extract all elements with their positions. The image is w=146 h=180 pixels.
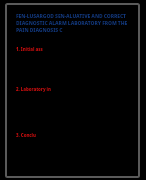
other: Report page (5, 3, 140, 178)
button[interactable]: 1. Initial ass (16, 44, 45, 54)
staticText: 3. Conclu (16, 132, 36, 138)
staticText: 2. Laboratory in (16, 86, 51, 92)
button[interactable]: 3. Conclu (16, 130, 38, 140)
staticText: PAIN DIAGNOSIS C (16, 27, 63, 34)
button[interactable]: 2. Laboratory in (16, 84, 53, 94)
staticText: DIAGNOSTIC ALARM LABORATORY FROM THE (16, 20, 128, 27)
staticText: FEN-LUSARGOD SEN-ALUATIVE AND CORRECT (16, 13, 126, 20)
staticText: 1. Initial ass (16, 46, 43, 52)
